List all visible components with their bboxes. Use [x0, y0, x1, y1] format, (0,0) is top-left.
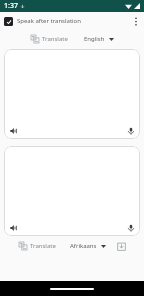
button[interactable]: Download language	[115, 240, 128, 253]
staticText: Speak after translation	[17, 17, 81, 25]
button[interactable]: Listen	[7, 124, 20, 137]
staticText: Translate	[30, 242, 56, 250]
button[interactable]: Listen	[4, 146, 140, 236]
staticText: 1:37	[4, 1, 18, 11]
button[interactable]: Listen	[7, 221, 20, 234]
button[interactable]: English	[81, 33, 117, 45]
button[interactable]: Listen	[4, 49, 140, 139]
button[interactable]: Speak	[124, 221, 137, 234]
staticText: Translate	[42, 35, 68, 43]
button[interactable]: Translate	[28, 33, 71, 45]
button[interactable]: Speak	[124, 124, 137, 137]
button[interactable]: Speak after translation	[0, 12, 128, 30]
button[interactable]: Translate	[16, 240, 59, 252]
staticText: English	[84, 35, 105, 43]
staticText: Afrikaans	[70, 242, 97, 250]
button[interactable]: Afrikaans	[67, 240, 109, 252]
button[interactable]: More options	[128, 12, 144, 30]
